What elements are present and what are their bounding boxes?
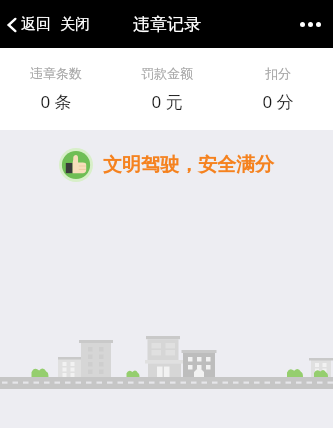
button[interactable]: Back	[0, 9, 55, 40]
staticText: 违章条数	[30, 65, 82, 81]
staticText: 返回	[21, 15, 51, 34]
staticText: 扣分	[265, 65, 291, 81]
staticText: 违章记录	[133, 14, 201, 35]
staticText: 0 条	[40, 90, 72, 113]
button[interactable]: 罚款金额	[111, 59, 222, 119]
button[interactable]: 关闭	[55, 9, 95, 40]
button[interactable]: 扣分	[222, 59, 333, 119]
button[interactable]: 违章条数	[0, 59, 111, 119]
staticText: 关闭	[60, 15, 90, 34]
staticText: 罚款金额	[141, 65, 193, 81]
staticText: 0 元	[151, 90, 183, 113]
staticText: 文明驾驶，安全满分	[103, 153, 274, 177]
other: Back	[6, 17, 18, 33]
button[interactable]: More options	[288, 10, 333, 39]
staticText: 0 分	[262, 90, 294, 113]
